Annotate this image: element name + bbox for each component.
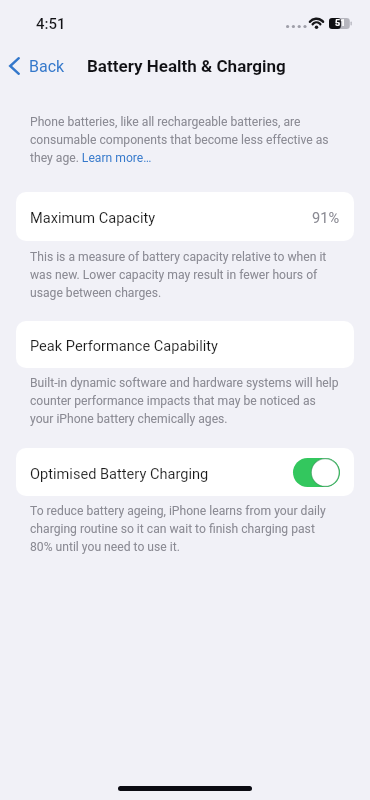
staticText: 4:51 — [36, 15, 66, 33]
staticText: Peak Performance Capability — [30, 337, 218, 354]
staticText: Phone batteries, like all rechargeable b… — [30, 115, 339, 165]
staticText: 51 — [335, 18, 346, 29]
button[interactable]: Back — [4, 52, 65, 80]
staticText: 91% — [312, 209, 340, 226]
staticText: Back — [29, 57, 65, 76]
staticText: To reduce battery ageing, iPhone learns … — [30, 504, 339, 554]
staticText: Optimised Battery Charging — [30, 465, 209, 482]
button[interactable]: Peak Performance Capability — [16, 321, 354, 368]
button[interactable]: Maximum Capacity — [16, 192, 354, 241]
button[interactable]: Optimised Battery Charging toggle — [293, 458, 340, 487]
staticText: This is a measure of battery capacity re… — [30, 250, 339, 300]
staticText: Built-in dynamic software and hardware s… — [30, 376, 339, 426]
button[interactable]: Optimised Battery Charging — [16, 448, 354, 496]
staticText: Maximum Capacity — [30, 209, 156, 226]
staticText: Battery Health & Charging — [87, 56, 286, 76]
